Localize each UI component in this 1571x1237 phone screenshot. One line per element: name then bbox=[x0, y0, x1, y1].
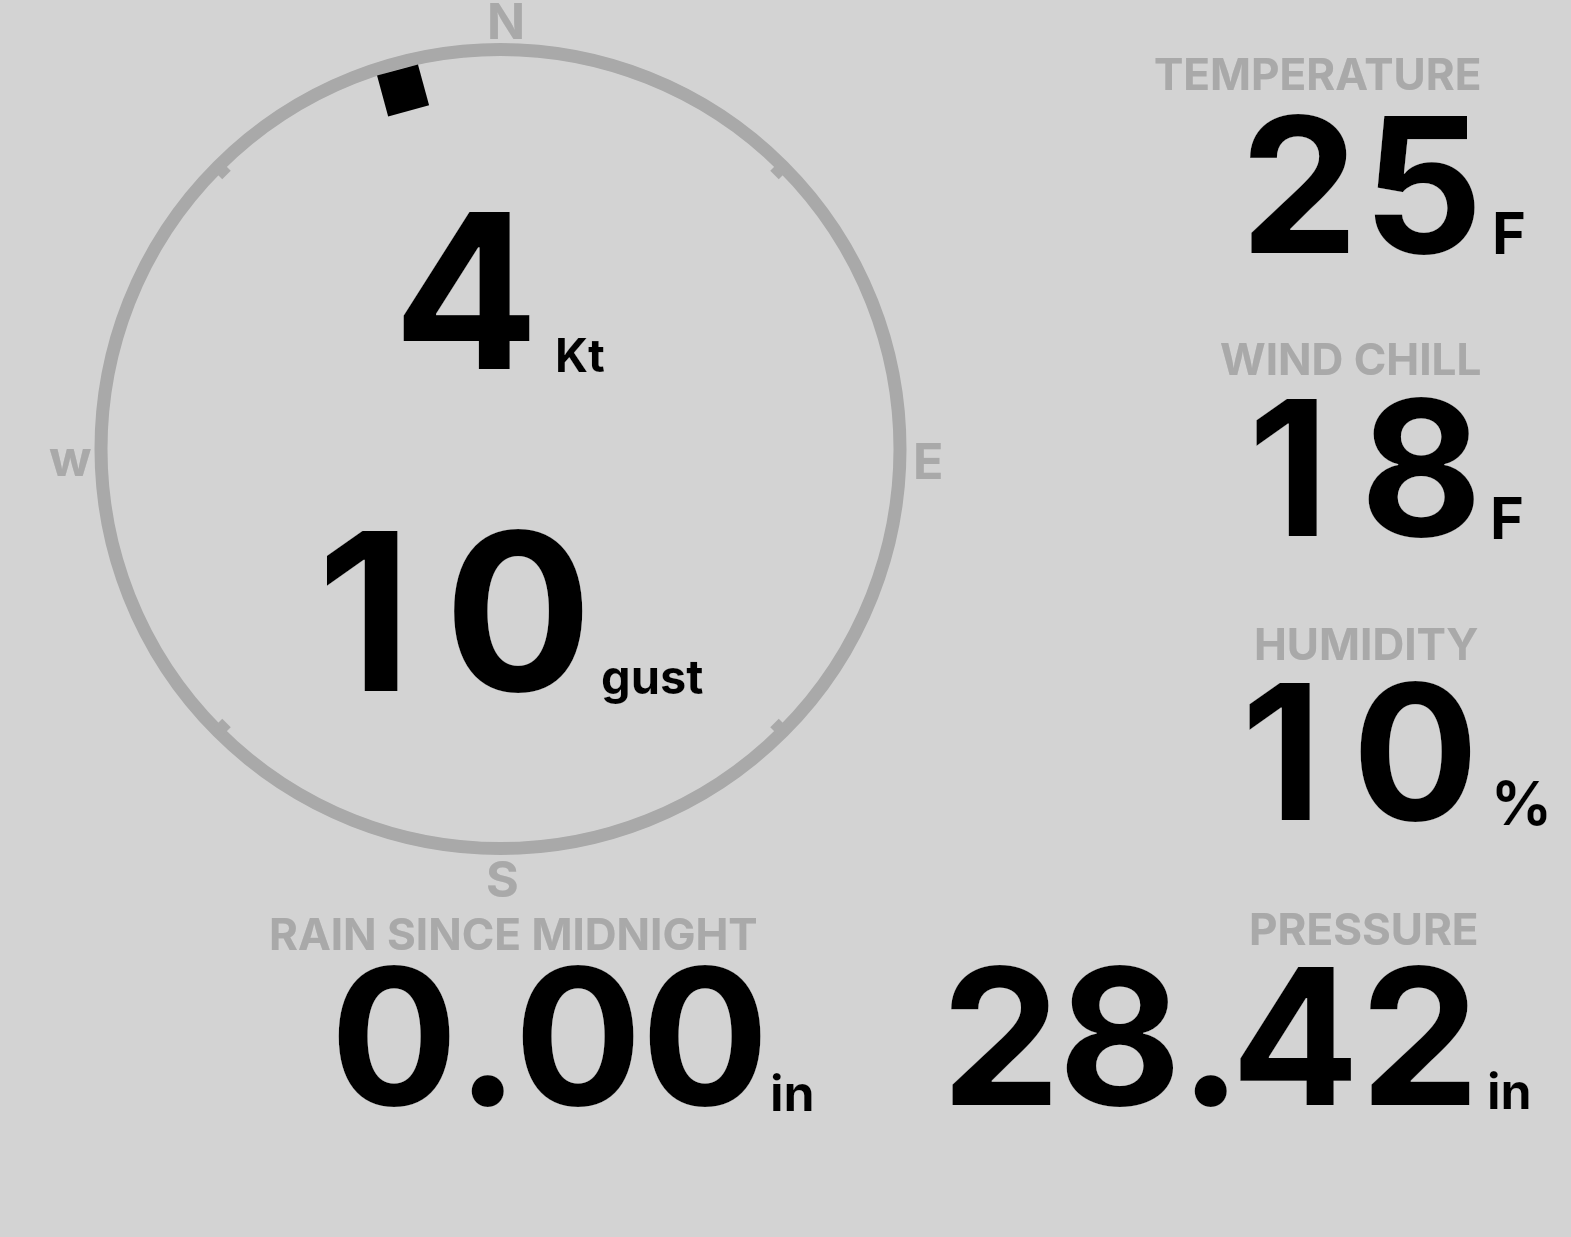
staticText: 0 bbox=[444, 478, 593, 744]
staticText: Kt bbox=[555, 327, 605, 383]
staticText: 0 bbox=[1352, 638, 1479, 865]
button[interactable]: Humidity 10 percent bbox=[1140, 614, 1565, 829]
staticText: 8 bbox=[1360, 354, 1483, 581]
staticText: 4 bbox=[393, 160, 540, 421]
staticText: gust bbox=[601, 648, 704, 705]
button[interactable]: Rain since midnight 0.00 inches bbox=[250, 904, 830, 1114]
staticText: 2 bbox=[941, 921, 1061, 1151]
staticText: 0 bbox=[330, 921, 459, 1151]
staticText: . bbox=[456, 921, 520, 1151]
staticText: TEMPERATURE bbox=[1154, 47, 1482, 100]
staticText: in bbox=[1487, 1061, 1532, 1121]
staticText: WIND CHILL bbox=[1220, 332, 1482, 385]
staticText: S bbox=[486, 849, 519, 909]
staticText: 8 bbox=[1058, 921, 1182, 1151]
button[interactable]: Wind direction compass, north-north-west bbox=[96, 44, 906, 854]
staticText: in bbox=[770, 1063, 815, 1123]
staticText: . bbox=[1179, 921, 1243, 1151]
button[interactable]: Temperature 25 degrees Fahrenheit bbox=[1140, 44, 1565, 264]
staticText: 2 bbox=[1240, 71, 1359, 298]
staticText: % bbox=[1491, 767, 1552, 840]
staticText: 0 bbox=[641, 921, 770, 1151]
button[interactable]: Wind gust 10 knots bbox=[300, 515, 720, 710]
staticText: F bbox=[1490, 483, 1525, 553]
staticText: 2 bbox=[1360, 921, 1480, 1151]
staticText: 1 bbox=[1248, 354, 1330, 581]
staticText: 1 bbox=[1241, 638, 1323, 865]
staticText: 4 bbox=[1231, 921, 1360, 1151]
staticText: HUMIDITY bbox=[1254, 617, 1479, 670]
staticText: PRESSURE bbox=[1249, 902, 1479, 955]
button[interactable]: Wind speed 4 knots bbox=[380, 200, 620, 380]
staticText: 0 bbox=[514, 921, 643, 1151]
staticText: RAIN SINCE MIDNIGHT bbox=[269, 907, 758, 960]
staticText: 1 bbox=[317, 478, 412, 744]
staticText: F bbox=[1492, 198, 1527, 268]
staticText: E bbox=[913, 431, 944, 491]
button[interactable]: Pressure 28.42 inches bbox=[930, 899, 1545, 1114]
staticText: 5 bbox=[1363, 71, 1484, 298]
staticText: N bbox=[487, 0, 526, 51]
button[interactable]: Wind chill 18 degrees Fahrenheit bbox=[1140, 330, 1565, 545]
staticText: w bbox=[49, 428, 92, 488]
